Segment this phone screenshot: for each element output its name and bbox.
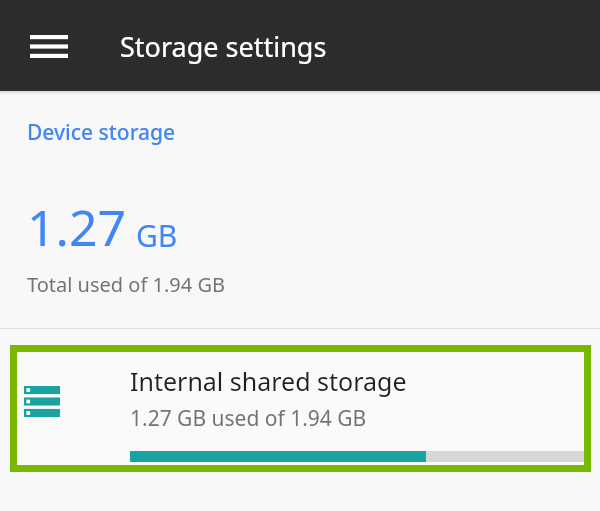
staticText: Total used of 1.94 GB (27, 271, 225, 298)
staticText: 1.27 GB used of 1.94 GB (130, 404, 367, 433)
staticText: 1.27 (27, 193, 127, 261)
button[interactable]: Open navigation menu (20, 25, 78, 67)
staticText: Storage settings (120, 28, 327, 65)
staticText: Internal shared storage (130, 364, 407, 398)
staticText: GB (136, 215, 178, 256)
button[interactable]: Internal shared storage (10, 345, 591, 472)
button[interactable]: Device storage (27, 118, 176, 147)
